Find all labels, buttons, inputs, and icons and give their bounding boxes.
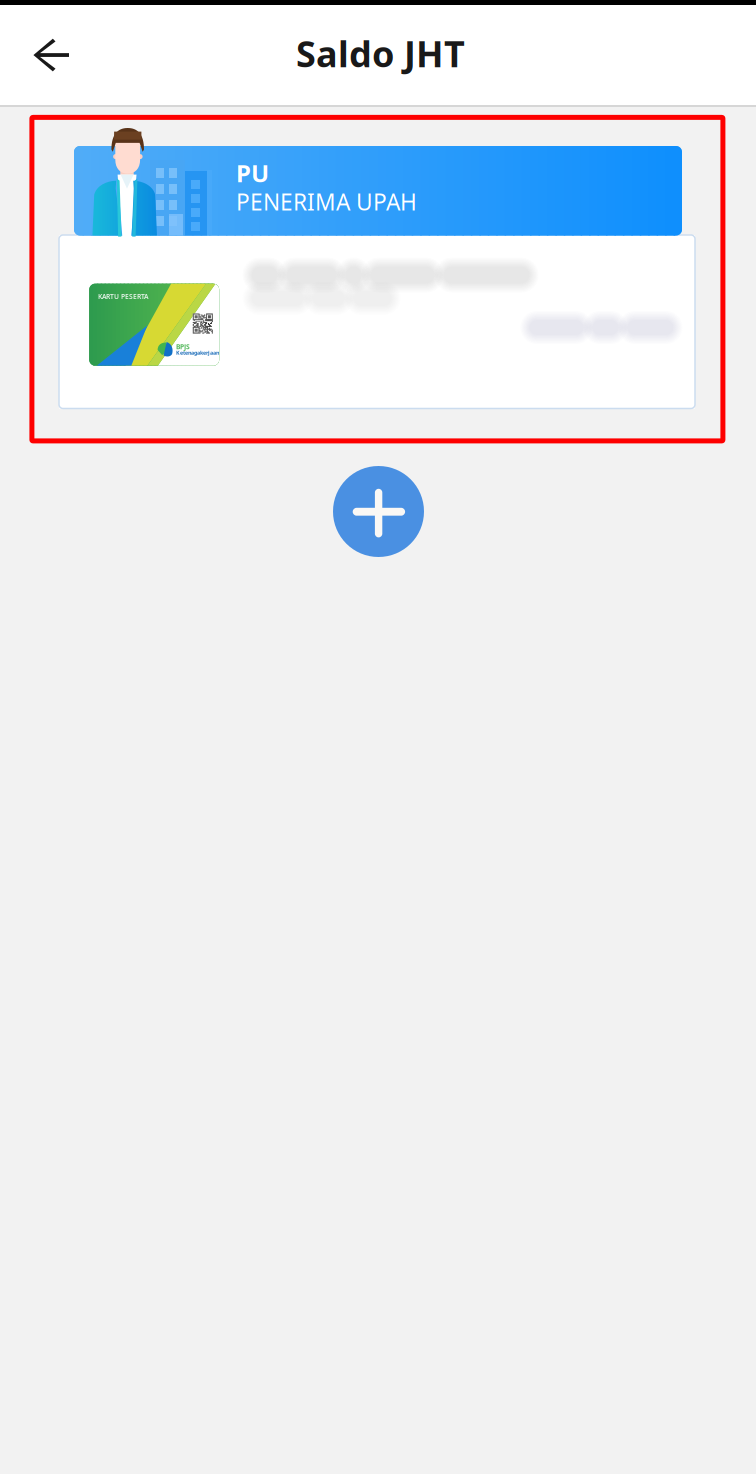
button[interactable]: Back bbox=[0, 5, 96, 105]
button[interactable]: Tambah kartu bbox=[333, 466, 424, 557]
staticText: PU bbox=[236, 157, 269, 189]
staticText: BPJS bbox=[176, 342, 190, 351]
staticText: Saldo JHT bbox=[296, 29, 465, 77]
staticText: Ketenagakerjaan bbox=[176, 349, 219, 356]
staticText: PENERIMA UPAH bbox=[236, 187, 417, 217]
staticText: KARTU PESERTA bbox=[98, 292, 148, 301]
